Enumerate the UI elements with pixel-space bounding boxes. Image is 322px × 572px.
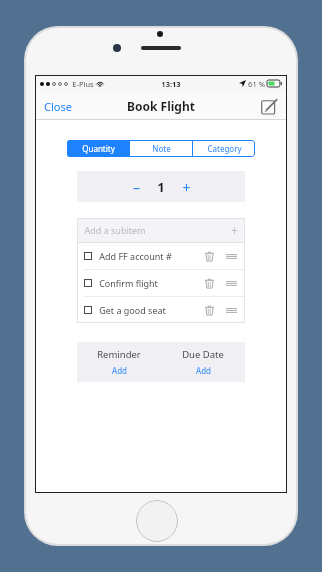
staticText: Add bbox=[112, 365, 127, 376]
staticText: + bbox=[182, 178, 191, 197]
staticText: Add FF account # bbox=[99, 250, 172, 262]
button[interactable]: Delete Get a good seat bbox=[202, 303, 216, 317]
staticText: Add a subitem bbox=[84, 224, 146, 236]
button[interactable]: Reorder Get a good seat bbox=[224, 303, 238, 317]
staticText: Due Date bbox=[182, 348, 224, 361]
button[interactable]: Toggle Get a good seat bbox=[77, 297, 245, 323]
other: Home bbox=[136, 500, 178, 542]
button[interactable]: Category bbox=[193, 140, 255, 157]
button[interactable]: Close bbox=[42, 96, 74, 117]
button[interactable]: Due Date bbox=[161, 342, 245, 382]
staticText: Note bbox=[152, 143, 171, 154]
button[interactable]: Toggle Get a good seat bbox=[84, 306, 92, 314]
staticText: 13:13 bbox=[161, 79, 181, 89]
button[interactable]: Toggle Add FF account # bbox=[84, 252, 92, 260]
button[interactable]: Delete Add FF account # bbox=[202, 249, 216, 263]
button[interactable]: Decrease bbox=[125, 176, 147, 198]
staticText: Category bbox=[207, 143, 242, 154]
button[interactable]: Toggle Confirm flight bbox=[84, 279, 92, 287]
button[interactable]: Add a subitem bbox=[77, 218, 245, 242]
staticText: Add bbox=[196, 365, 211, 376]
staticText: – bbox=[133, 178, 140, 197]
button[interactable]: Quantity bbox=[67, 140, 129, 157]
staticText: Book Flight bbox=[127, 98, 195, 114]
button[interactable]: Delete Confirm flight bbox=[202, 276, 216, 290]
staticText: Close bbox=[44, 99, 72, 114]
staticText: Confirm flight bbox=[99, 277, 158, 289]
button[interactable]: Reminder bbox=[77, 342, 161, 382]
button[interactable]: Toggle Confirm flight bbox=[77, 270, 245, 296]
button[interactable]: Reorder Add FF account # bbox=[224, 249, 238, 263]
button[interactable]: Note bbox=[130, 140, 192, 157]
staticText: Quantity bbox=[82, 143, 115, 154]
button[interactable]: Edit bbox=[259, 96, 279, 116]
staticText: E-Plus bbox=[72, 79, 94, 89]
button[interactable]: Increase bbox=[175, 176, 197, 198]
button[interactable]: Reorder Confirm flight bbox=[224, 276, 238, 290]
staticText: 61 % bbox=[248, 79, 265, 89]
button[interactable]: Toggle Add FF account # bbox=[77, 243, 245, 269]
staticText: + bbox=[231, 222, 238, 238]
staticText: Reminder bbox=[97, 348, 141, 361]
staticText: Get a good seat bbox=[99, 304, 166, 316]
staticText: 1 bbox=[157, 178, 165, 196]
